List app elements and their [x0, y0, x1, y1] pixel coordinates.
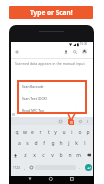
button[interactable]: t [45, 129, 52, 136]
staticText: e [31, 129, 34, 136]
button[interactable]: v [49, 152, 56, 159]
staticText: Type or Scan! [30, 8, 73, 17]
button[interactable]: Enter [83, 162, 93, 173]
button[interactable]: y [52, 129, 59, 136]
staticText: , [24, 165, 26, 170]
button[interactable]: Emoji [28, 162, 34, 173]
button[interactable]: d [32, 140, 39, 147]
button[interactable]: Comma [22, 162, 28, 173]
button[interactable]: r [37, 129, 44, 136]
staticText: l [84, 140, 86, 147]
button[interactable]: k [73, 140, 80, 147]
staticText: s [26, 140, 29, 147]
button[interactable]: s [24, 140, 31, 147]
button[interactable]: h [57, 140, 64, 147]
button[interactable]: Settings [78, 119, 82, 123]
staticText: f [43, 140, 45, 147]
button[interactable]: Voice input [62, 48, 69, 55]
staticText: b [59, 152, 63, 159]
button[interactable]: u [60, 129, 67, 136]
button[interactable]: c [40, 152, 47, 159]
button[interactable]: Type or Scan! [9, 6, 93, 19]
button[interactable]: More options [85, 119, 89, 123]
staticText: 10:30 [80, 42, 88, 46]
button[interactable]: w [21, 129, 28, 136]
button[interactable]: Scan Barcode [17, 80, 87, 114]
button[interactable]: Emoji [58, 119, 62, 123]
button[interactable]: Manual input [69, 120, 74, 125]
staticText: i [71, 129, 73, 136]
button[interactable]: Clipboard [68, 119, 73, 124]
staticText: p [86, 129, 90, 136]
staticText: c [42, 152, 45, 159]
staticText: x [33, 152, 36, 159]
staticText: w [23, 129, 27, 136]
staticText: u [62, 129, 66, 136]
staticText: v [51, 152, 54, 159]
staticText: . [79, 165, 81, 170]
button[interactable]: Backspace [84, 150, 93, 160]
button[interactable]: ?123 [11, 162, 22, 173]
button[interactable]: g [49, 140, 56, 147]
button[interactable]: f [40, 140, 47, 147]
button[interactable]: x [31, 152, 38, 159]
staticText: o [78, 129, 82, 136]
button[interactable]: p [84, 129, 91, 136]
button[interactable]: Account [81, 48, 88, 55]
button[interactable]: z [22, 152, 29, 159]
staticText: r [39, 129, 42, 136]
staticText: z [24, 152, 27, 159]
button[interactable]: Search [71, 48, 78, 55]
button[interactable]: n [66, 152, 73, 159]
staticText: q [15, 129, 19, 136]
button[interactable]: Add [13, 48, 20, 55]
staticText: Read NFC Tag [22, 108, 44, 113]
staticText: ?123 [13, 166, 20, 170]
button[interactable]: Shift [11, 150, 20, 160]
staticText: y [54, 129, 57, 136]
staticText: n [68, 152, 72, 159]
staticText: h [59, 140, 63, 147]
staticText: Scan Text (OCR) [22, 96, 47, 101]
staticText: a [18, 140, 21, 147]
button[interactable]: o [76, 129, 83, 136]
button[interactable]: l [81, 140, 88, 147]
staticText: k [75, 140, 78, 147]
staticText: Scan Barcode [22, 84, 44, 89]
staticText: j [68, 140, 70, 147]
button[interactable]: b [57, 152, 64, 159]
staticText: m [76, 152, 81, 159]
staticText: d [34, 140, 38, 147]
button[interactable]: q [13, 129, 20, 136]
button[interactable]: e [29, 129, 36, 136]
button[interactable]: j [65, 140, 72, 147]
button[interactable]: m [75, 152, 82, 159]
staticText: t [48, 129, 50, 136]
button[interactable]: i [68, 129, 75, 136]
staticText: g [51, 140, 55, 147]
staticText: Scanned data appears in the manual input [15, 61, 85, 66]
button[interactable]: a [16, 140, 23, 147]
